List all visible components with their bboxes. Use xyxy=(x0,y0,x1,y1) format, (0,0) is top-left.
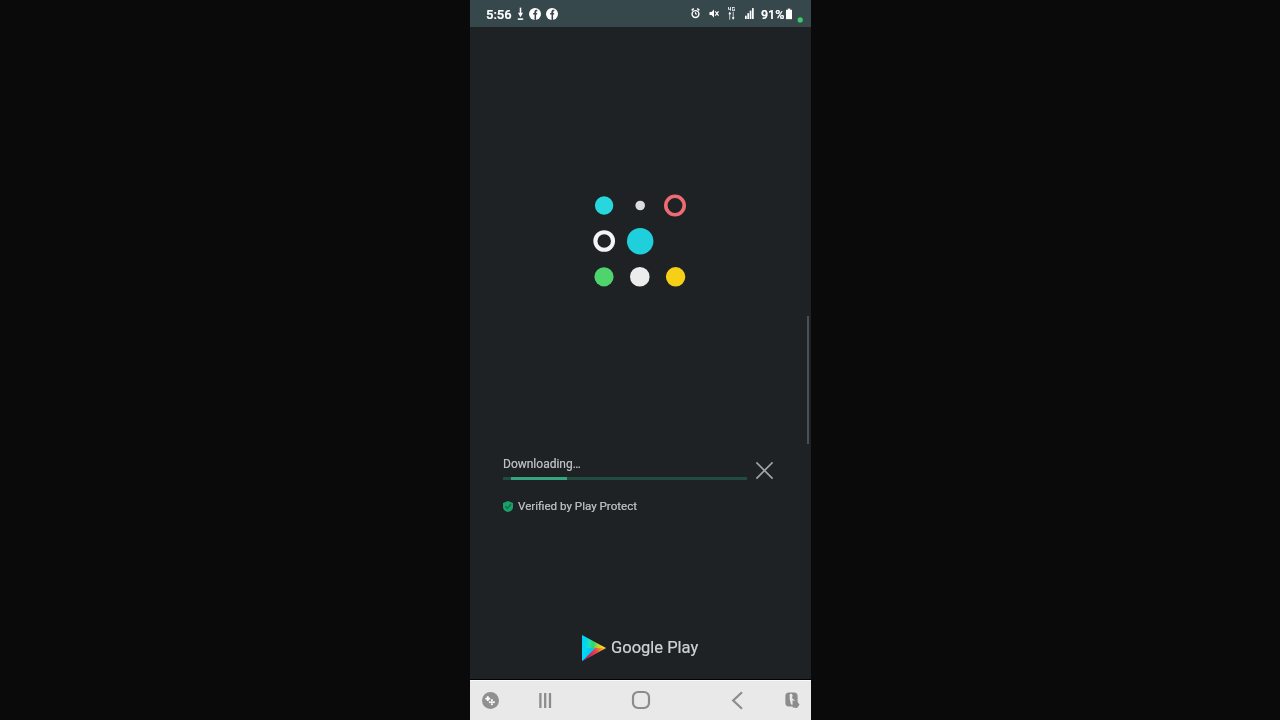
staticText: 91% xyxy=(761,7,785,22)
staticText: Verified by Play Protect xyxy=(518,499,638,513)
button[interactable]: Screenshot xyxy=(773,680,809,720)
button[interactable]: Back xyxy=(719,680,755,720)
staticText: Google Play xyxy=(611,638,699,657)
button[interactable]: Home xyxy=(623,680,659,720)
button[interactable]: Cancel download xyxy=(748,454,780,486)
button[interactable]: Recent apps xyxy=(527,680,563,720)
staticText: 5:56 xyxy=(486,7,512,22)
button[interactable]: Verified by Play Protect xyxy=(503,499,638,513)
staticText: Downloading… xyxy=(503,457,581,471)
button[interactable]: Assistant xyxy=(472,680,508,720)
